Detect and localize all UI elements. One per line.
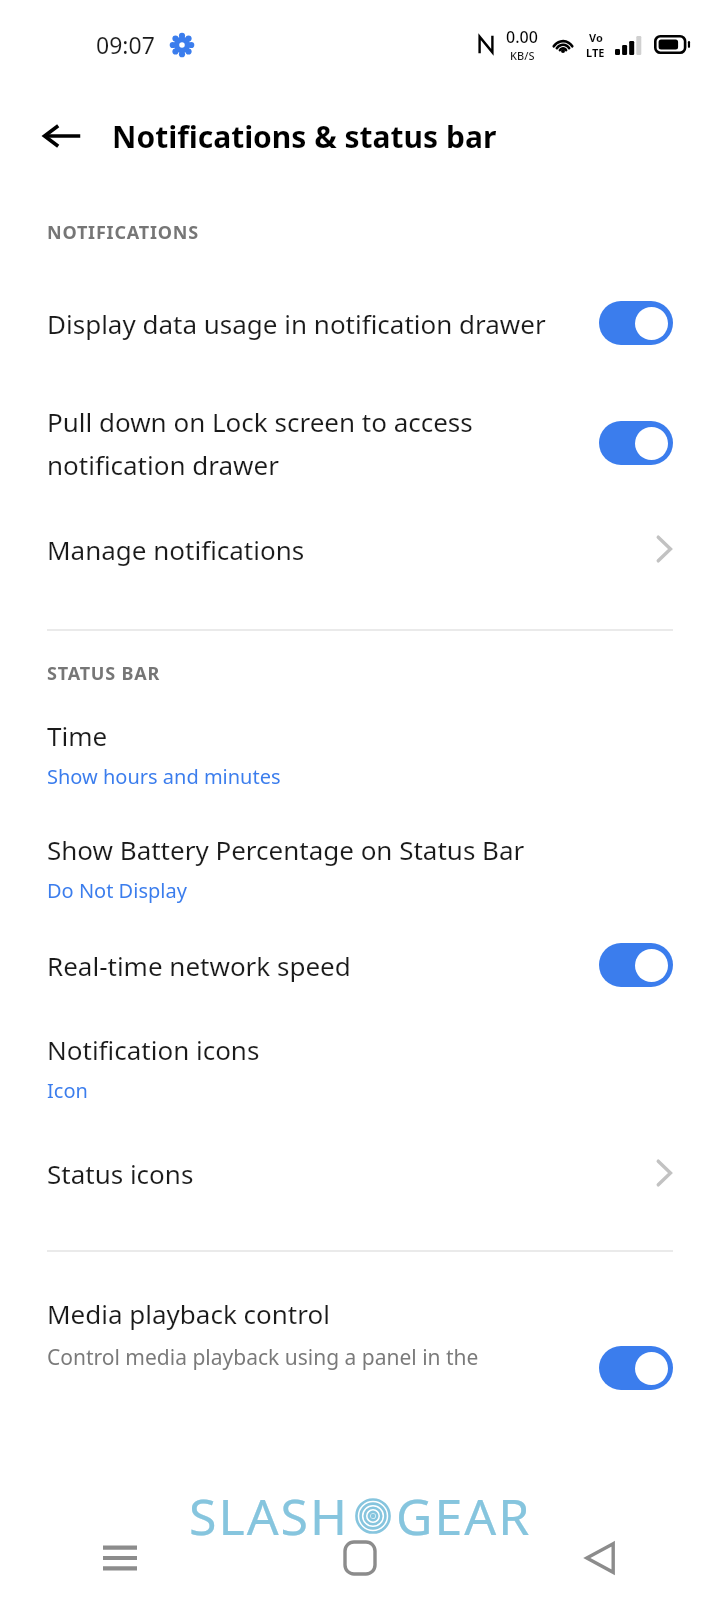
button[interactable]: Media playback control bbox=[0, 1296, 720, 1390]
button[interactable]: Toggle on bbox=[599, 1346, 673, 1390]
button[interactable]: Back bbox=[480, 1516, 720, 1600]
staticText: Display data usage in notification drawe… bbox=[47, 306, 547, 341]
button[interactable]: Toggle on bbox=[599, 943, 673, 987]
staticText: 09:07 bbox=[96, 29, 155, 60]
button[interactable]: Show Battery Percentage on Status Bar bbox=[0, 832, 720, 904]
staticText: Media playback control bbox=[47, 1296, 330, 1331]
staticText: Status icons bbox=[47, 1156, 194, 1191]
button[interactable]: Home bbox=[240, 1516, 480, 1600]
staticText: Pull down on Lock screen to access notif… bbox=[47, 404, 562, 482]
staticText: NOTIFICATIONS bbox=[47, 220, 199, 245]
button[interactable]: Manage notifications bbox=[0, 517, 720, 581]
button[interactable]: Real-time network speed bbox=[0, 936, 720, 994]
staticText: Control media playback using a panel in … bbox=[47, 1343, 479, 1372]
staticText: Real-time network speed bbox=[47, 948, 547, 983]
button[interactable]: Toggle on bbox=[599, 301, 673, 345]
button[interactable]: Toggle on bbox=[599, 421, 673, 465]
staticText: Show Battery Percentage on Status Bar bbox=[47, 832, 525, 867]
staticText: SLASH bbox=[189, 1482, 350, 1550]
staticText: KB/S bbox=[510, 48, 535, 63]
staticText: Notifications & status bar bbox=[112, 116, 497, 157]
staticText: 0.00 bbox=[506, 26, 538, 48]
staticText: Show hours and minutes bbox=[47, 763, 281, 790]
staticText: Notification icons bbox=[47, 1032, 260, 1067]
staticText: LTE bbox=[586, 45, 605, 60]
staticText: Manage notifications bbox=[47, 532, 305, 567]
button[interactable]: Status icons bbox=[0, 1144, 720, 1202]
button[interactable]: Back bbox=[28, 102, 96, 170]
button[interactable]: Recent apps bbox=[0, 1516, 240, 1600]
button[interactable]: Notification icons bbox=[0, 1032, 720, 1104]
staticText: Vo bbox=[589, 30, 603, 45]
staticText: Time bbox=[47, 718, 108, 753]
button[interactable]: Pull down on Lock screen to access notif… bbox=[0, 395, 720, 491]
staticText: STATUS BAR bbox=[47, 661, 161, 686]
staticText: Do Not Display bbox=[47, 877, 187, 904]
staticText: GEAR bbox=[396, 1482, 532, 1550]
button[interactable]: Display data usage in notification drawe… bbox=[0, 275, 720, 371]
button[interactable]: Time bbox=[0, 718, 720, 790]
staticText: Icon bbox=[47, 1077, 88, 1104]
